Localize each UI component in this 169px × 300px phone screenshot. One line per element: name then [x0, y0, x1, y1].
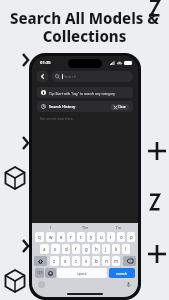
staticText: s	[54, 246, 57, 252]
staticText: c	[75, 258, 78, 264]
staticText: Search All Models & Collections	[10, 8, 159, 47]
button[interactable]: k	[112, 244, 120, 254]
button[interactable]: I	[34, 223, 68, 231]
staticText: 01:35	[40, 60, 51, 66]
button[interactable]: o	[117, 232, 125, 242]
button[interactable]: space	[57, 268, 107, 278]
staticText: n	[105, 258, 108, 264]
button[interactable]: b	[92, 256, 100, 266]
button[interactable]: v	[82, 256, 90, 266]
button[interactable]: g	[82, 244, 90, 254]
staticText: e	[60, 234, 63, 240]
button[interactable]: shift	[34, 256, 47, 266]
button[interactable]: i	[107, 232, 115, 242]
button[interactable]: 123	[35, 268, 44, 278]
button[interactable]: j	[102, 244, 110, 254]
button[interactable]: Tip: Start with "tag" to search any cate…	[41, 87, 129, 98]
button[interactable]: Back	[37, 71, 48, 82]
staticText: 123	[37, 271, 43, 275]
button[interactable]: I'm	[102, 223, 136, 231]
staticText: g	[85, 246, 88, 252]
button[interactable]: r	[67, 232, 75, 242]
button[interactable]: p	[127, 232, 135, 242]
button[interactable]: z	[50, 256, 59, 266]
staticText: h	[95, 246, 98, 252]
staticText: d	[65, 246, 68, 252]
button[interactable]: Emoji	[45, 268, 56, 278]
button[interactable]: x	[61, 256, 70, 266]
staticText: y	[90, 234, 93, 240]
staticText: v	[85, 258, 88, 264]
staticText: I'm	[116, 225, 122, 230]
staticText: a	[43, 246, 46, 252]
staticText: x	[64, 258, 67, 264]
button[interactable]: Backspace	[123, 256, 136, 266]
staticText: u	[100, 234, 103, 240]
button[interactable]: a	[40, 244, 49, 254]
staticText: r	[70, 234, 72, 240]
staticText: f	[75, 246, 77, 252]
button[interactable]: c	[72, 256, 80, 266]
staticText: Clear	[118, 105, 126, 109]
staticText: The	[82, 225, 89, 230]
staticText: k	[115, 246, 118, 252]
staticText: l	[125, 246, 127, 252]
staticText: b	[95, 258, 98, 264]
staticText: q	[38, 234, 41, 240]
button[interactable]: Clear	[114, 105, 126, 109]
button[interactable]: Dictate	[125, 281, 132, 288]
button[interactable]: search	[109, 268, 135, 278]
staticText: Search	[64, 74, 77, 79]
staticText: i	[110, 234, 112, 240]
button[interactable]: Search	[55, 71, 129, 82]
staticText: search	[116, 271, 128, 276]
staticText: j	[105, 246, 107, 252]
button[interactable]: y	[87, 232, 95, 242]
button[interactable]: e	[57, 232, 65, 242]
button[interactable]: s	[51, 244, 60, 254]
staticText: w	[49, 234, 53, 240]
button[interactable]: l	[122, 244, 130, 254]
button[interactable]: The	[68, 223, 102, 231]
staticText: m	[114, 258, 119, 264]
staticText: o	[120, 234, 123, 240]
button[interactable]: q	[35, 232, 44, 242]
button[interactable]: h	[92, 244, 100, 254]
button[interactable]: n	[102, 256, 110, 266]
staticText: z	[53, 258, 56, 264]
button[interactable]: t	[77, 232, 85, 242]
staticText: space	[77, 271, 87, 276]
staticText: Tip: Start with "tag" to search any cate…	[49, 91, 115, 95]
staticText: t	[80, 234, 82, 240]
button[interactable]: m	[112, 256, 120, 266]
staticText: p	[130, 234, 133, 240]
button[interactable]: u	[97, 232, 105, 242]
staticText: Search History	[49, 104, 76, 109]
button[interactable]: w	[46, 232, 55, 242]
staticText: I	[50, 225, 52, 230]
staticText: No recent searches.	[40, 116, 74, 121]
button[interactable]: f	[72, 244, 80, 254]
button[interactable]: d	[62, 244, 70, 254]
button[interactable]: Globe	[38, 281, 45, 288]
